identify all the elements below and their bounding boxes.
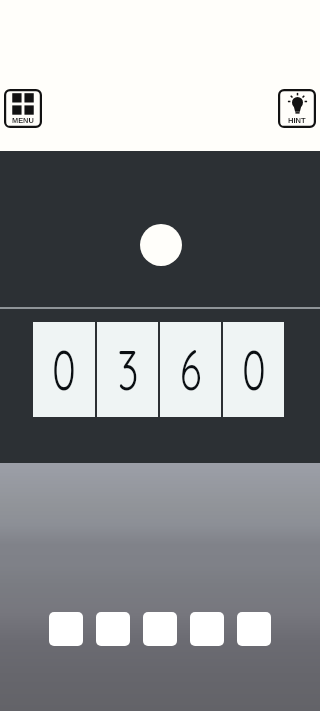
- button[interactable]: Tile 1: [49, 612, 83, 646]
- button[interactable]: Tile 3: [143, 612, 177, 646]
- button[interactable]: 0: [223, 322, 284, 417]
- staticText: MENU: [12, 116, 34, 124]
- button[interactable]: Tile 4: [190, 612, 224, 646]
- staticText: HINT: [288, 116, 306, 124]
- button[interactable]: Round button: [140, 224, 182, 266]
- button[interactable]: Hint: [278, 89, 316, 128]
- staticText: 6: [179, 334, 202, 404]
- button[interactable]: Tile 5: [237, 612, 271, 646]
- staticText: 3: [117, 334, 139, 404]
- button[interactable]: 6: [160, 322, 221, 417]
- button[interactable]: 3: [97, 322, 158, 417]
- button[interactable]: Menu: [4, 89, 42, 128]
- staticText: 0: [52, 334, 76, 404]
- staticText: 0: [242, 334, 266, 404]
- button[interactable]: 0: [33, 322, 95, 417]
- button[interactable]: Tile 2: [96, 612, 130, 646]
